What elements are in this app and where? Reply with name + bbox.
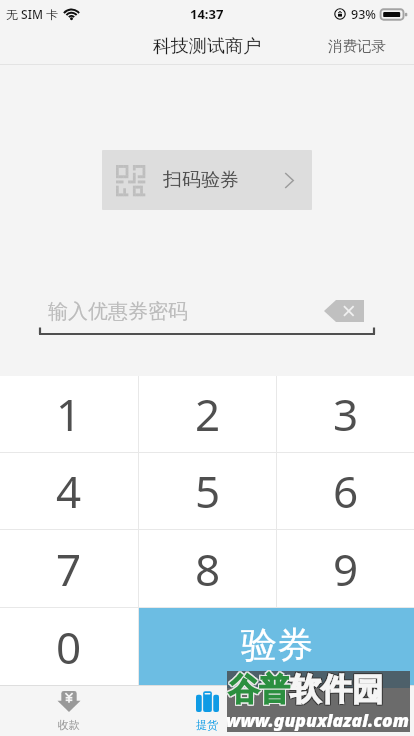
staticText: 谷普 bbox=[228, 670, 290, 709]
staticText: 8 bbox=[195, 539, 221, 599]
staticText: 软件园 bbox=[290, 670, 383, 709]
staticText: 7 bbox=[56, 539, 82, 599]
button[interactable]: 验券 bbox=[139, 608, 414, 685]
button[interactable]: 0 bbox=[0, 608, 138, 685]
staticText: 3 bbox=[333, 384, 359, 444]
button[interactable]: 我的 bbox=[276, 686, 414, 736]
staticText: 无 SIM 卡 bbox=[6, 6, 59, 22]
staticText: 软件园 bbox=[289, 670, 382, 709]
button[interactable]: 7 bbox=[0, 530, 138, 607]
staticText: 扫码验券 bbox=[163, 168, 239, 192]
staticText: 9 bbox=[333, 539, 359, 599]
staticText: 软件园 bbox=[289, 671, 382, 710]
staticText: 0 bbox=[56, 617, 82, 677]
staticText: 收款 bbox=[58, 718, 80, 732]
staticText: 软件园 bbox=[290, 669, 383, 708]
staticText: 软件园 bbox=[291, 671, 384, 710]
staticText: 软件园 bbox=[290, 671, 383, 710]
staticText: 软件园 bbox=[291, 669, 384, 708]
staticText: 谷普 bbox=[227, 671, 289, 710]
staticText: 谷普 bbox=[227, 669, 289, 708]
staticText: 6 bbox=[333, 461, 359, 521]
button[interactable]: 1 bbox=[0, 376, 138, 452]
button[interactable]: 6 bbox=[277, 453, 414, 529]
staticText: 93% bbox=[351, 6, 376, 23]
button[interactable]: 8 bbox=[139, 530, 276, 607]
button[interactable]: 收款 bbox=[0, 686, 138, 736]
staticText: 我的 bbox=[334, 718, 356, 732]
staticText: 谷普 bbox=[229, 671, 291, 710]
staticText: 2 bbox=[195, 384, 221, 444]
staticText: 输入优惠券密码 bbox=[48, 299, 188, 324]
staticText: 谷普 bbox=[228, 671, 290, 710]
staticText: 软件园 bbox=[291, 670, 384, 709]
button[interactable]: 扫码验券 bbox=[102, 150, 312, 210]
staticText: 5 bbox=[195, 461, 221, 521]
button[interactable]: 3 bbox=[277, 376, 414, 452]
button[interactable]: 2 bbox=[139, 376, 276, 452]
staticText: www.gupuxlazal.com bbox=[226, 708, 409, 732]
staticText: 谷普 bbox=[229, 669, 291, 708]
button[interactable]: 提货 bbox=[138, 686, 276, 736]
button[interactable]: 输入优惠券密码 bbox=[34, 290, 380, 340]
staticText: 消费记录 bbox=[328, 37, 386, 55]
staticText: 谷普 bbox=[229, 670, 291, 709]
button[interactable]: 9 bbox=[277, 530, 414, 607]
staticText: 谷普 bbox=[227, 670, 289, 709]
button[interactable]: Delete bbox=[324, 300, 364, 322]
staticText: 谷普 bbox=[228, 669, 290, 708]
button[interactable]: 消费记录 bbox=[312, 28, 414, 64]
button[interactable]: 4 bbox=[0, 453, 138, 529]
staticText: 验券 bbox=[241, 622, 313, 667]
staticText: 4 bbox=[56, 461, 82, 521]
staticText: 14:37 bbox=[190, 5, 224, 23]
button[interactable]: 5 bbox=[139, 453, 276, 529]
staticText: 科技测试商户 bbox=[153, 35, 261, 58]
staticText: 1 bbox=[56, 384, 82, 444]
staticText: 提货 bbox=[196, 718, 218, 732]
staticText: 软件园 bbox=[289, 669, 382, 708]
